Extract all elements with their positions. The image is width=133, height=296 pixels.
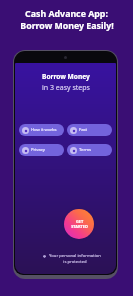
staticText: Privacy bbox=[31, 147, 45, 153]
button[interactable]: Fast bbox=[67, 124, 112, 136]
staticText: Fast bbox=[79, 127, 88, 133]
staticText: Borrow Money bbox=[42, 72, 90, 81]
staticText: Your personal information is protected bbox=[49, 253, 101, 264]
staticText: Terms bbox=[79, 147, 92, 153]
button[interactable]: GET STARTED bbox=[64, 209, 94, 239]
staticText: Cash Advance App: bbox=[25, 8, 108, 20]
button[interactable]: Privacy bbox=[19, 144, 64, 156]
staticText: How it works bbox=[31, 127, 57, 133]
staticText: GET STARTED bbox=[71, 219, 88, 229]
staticText: in 3 easy steps bbox=[42, 83, 90, 93]
button[interactable]: How it works bbox=[19, 124, 64, 136]
button[interactable]: Terms bbox=[67, 144, 112, 156]
staticText: Borrow Money Easily! bbox=[20, 20, 114, 32]
